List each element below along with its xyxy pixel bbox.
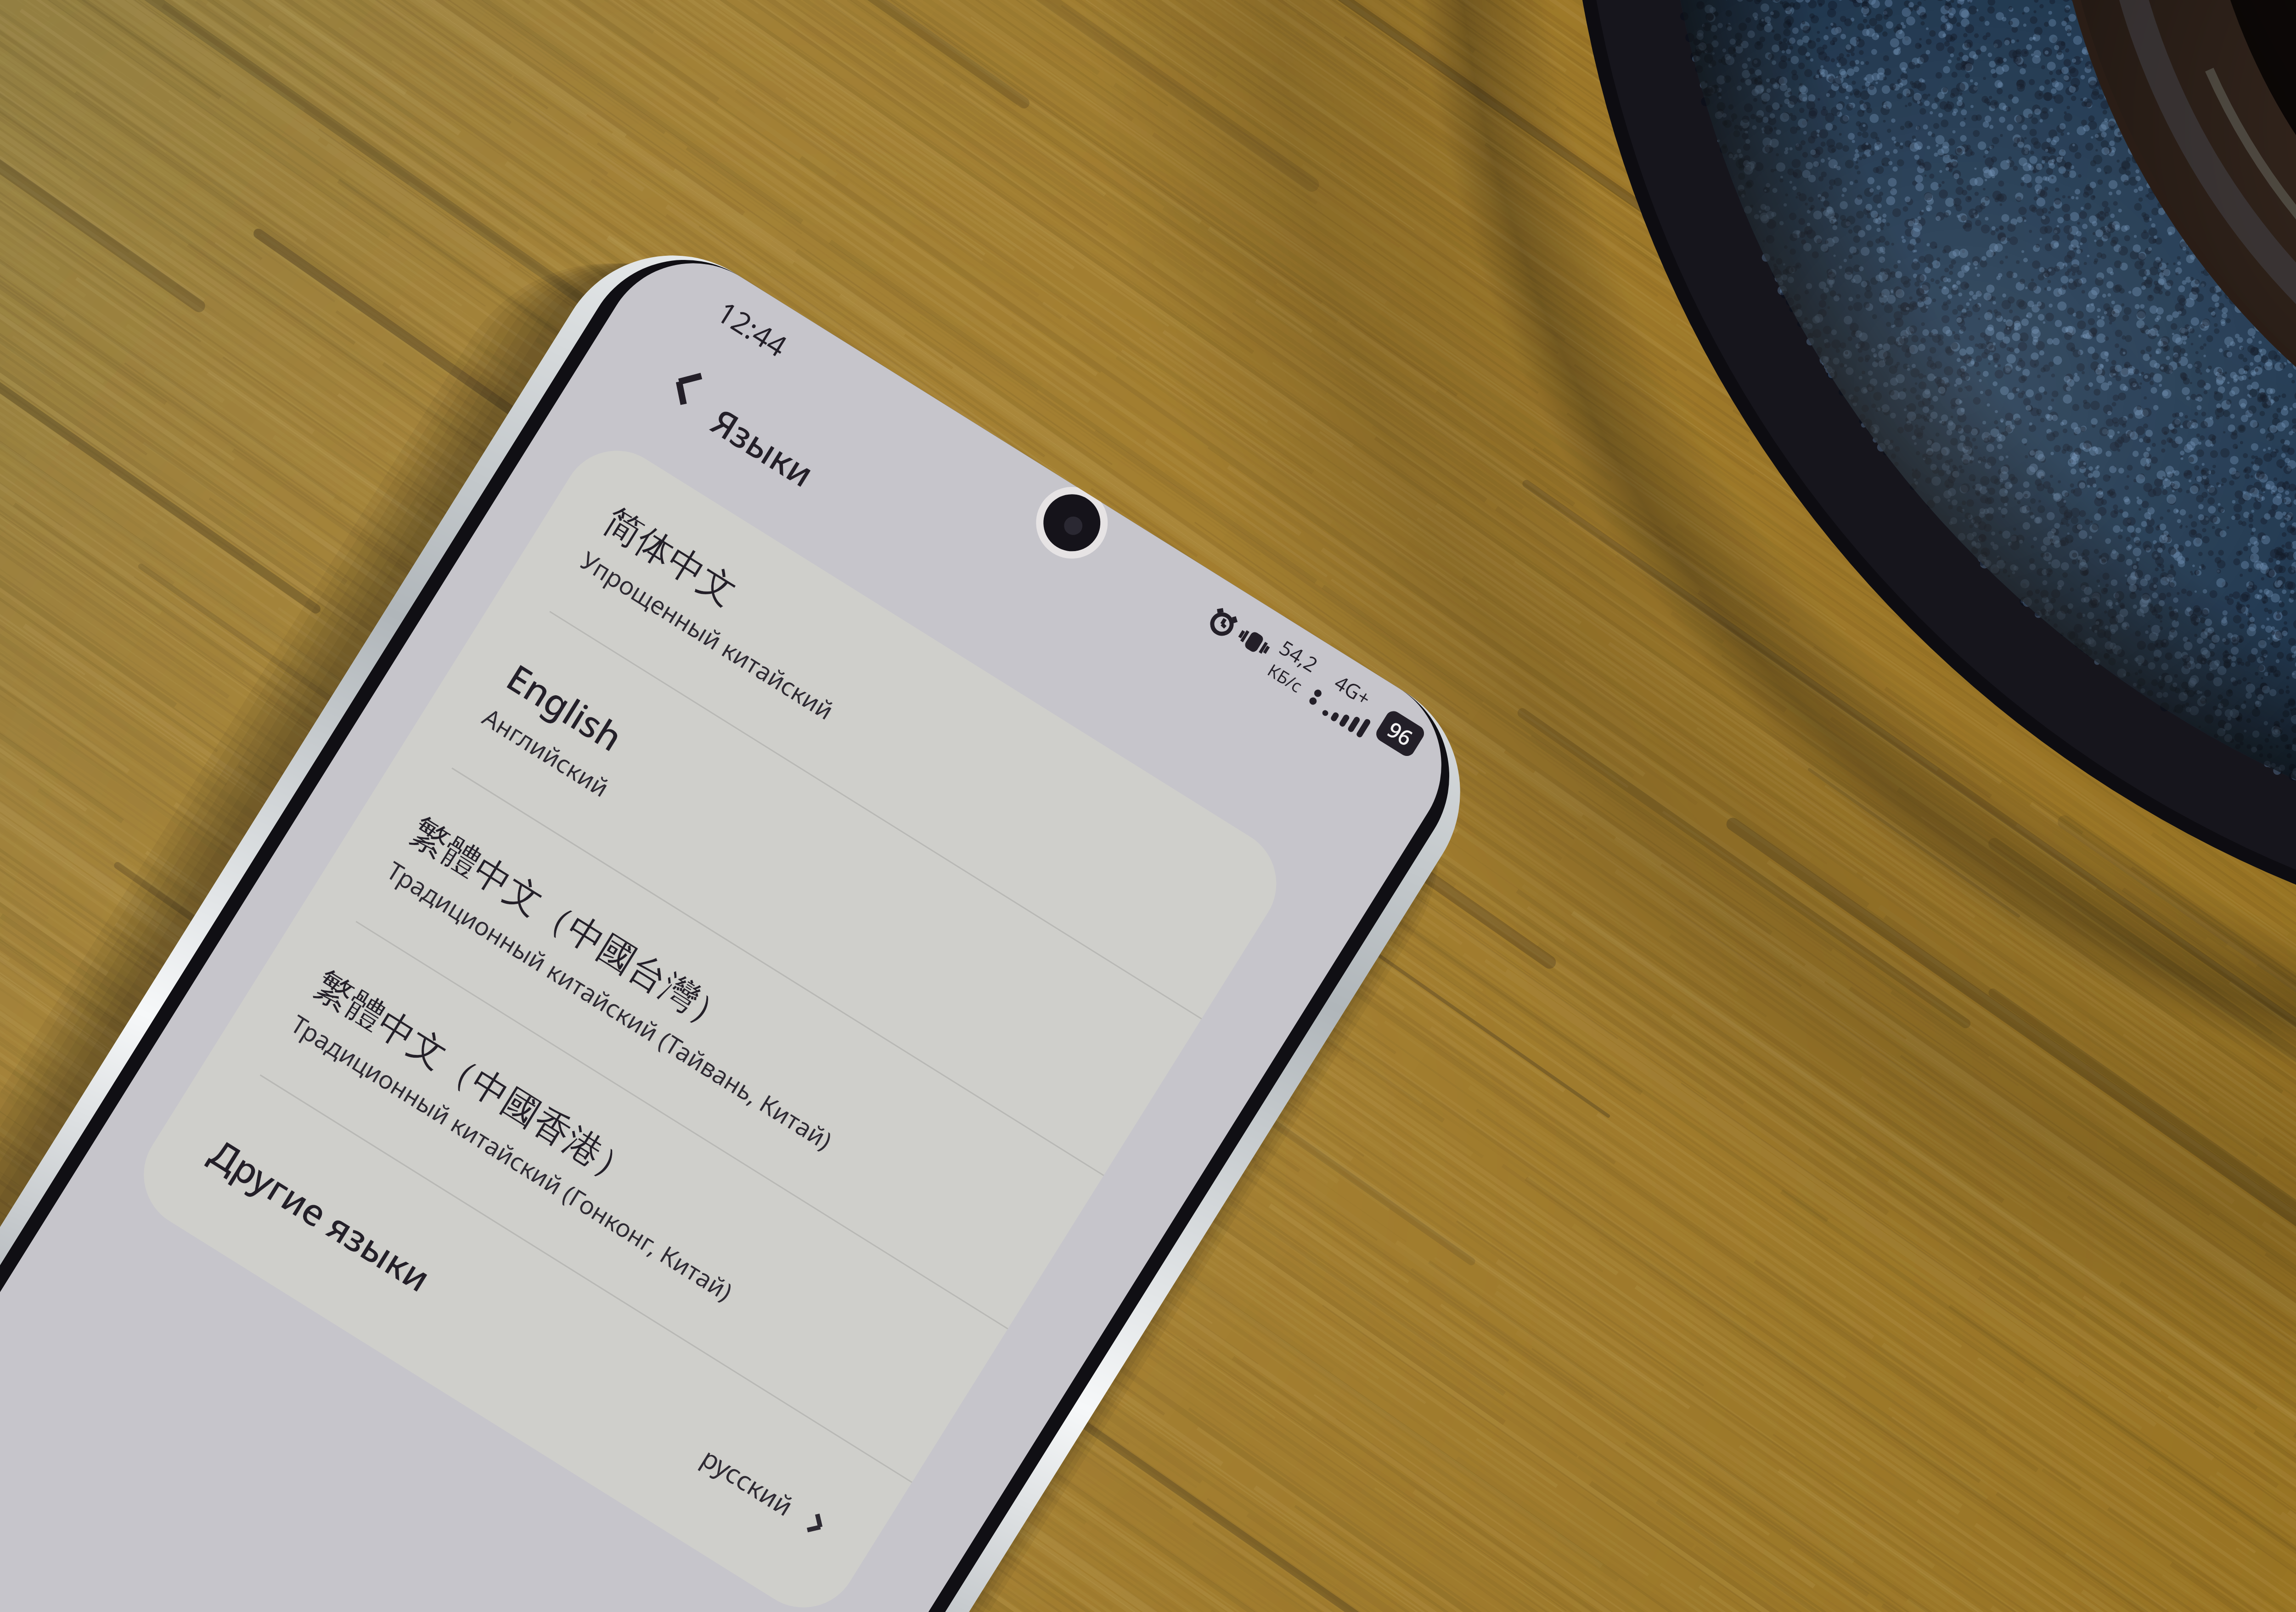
staticText: русский: [695, 1439, 800, 1524]
staticText: Традиционный китайский (Тайвань, Китай): [381, 853, 839, 1157]
button[interactable]: 简体中文: [504, 430, 1297, 1018]
staticText: 繁體中文（中國香港）: [306, 962, 642, 1196]
staticText: Языки: [702, 397, 823, 497]
staticText: 简体中文: [596, 498, 745, 616]
staticText: КБ/с: [1263, 658, 1307, 698]
staticText: Упрощенный китайский: [574, 543, 840, 727]
staticText: 54,2: [1275, 634, 1323, 678]
button[interactable]: Другие языки: [123, 1047, 912, 1612]
staticText: 4G+: [1330, 668, 1376, 712]
button[interactable]: Back: [634, 334, 739, 439]
staticText: English: [498, 652, 632, 762]
staticText: Традиционный китайский (Гонконг, Китай): [285, 1007, 739, 1308]
staticText: Английский: [477, 700, 616, 804]
staticText: 96: [1382, 715, 1418, 752]
staticText: 12:44: [710, 292, 795, 366]
staticText: 繁體中文（中國台灣）: [402, 808, 738, 1042]
button[interactable]: 繁體中文（中國台灣）: [310, 740, 1103, 1328]
staticText: Другие языки: [201, 1127, 440, 1302]
button[interactable]: 繁體中文（中國香港）: [215, 893, 1008, 1482]
button[interactable]: English: [406, 583, 1201, 1175]
